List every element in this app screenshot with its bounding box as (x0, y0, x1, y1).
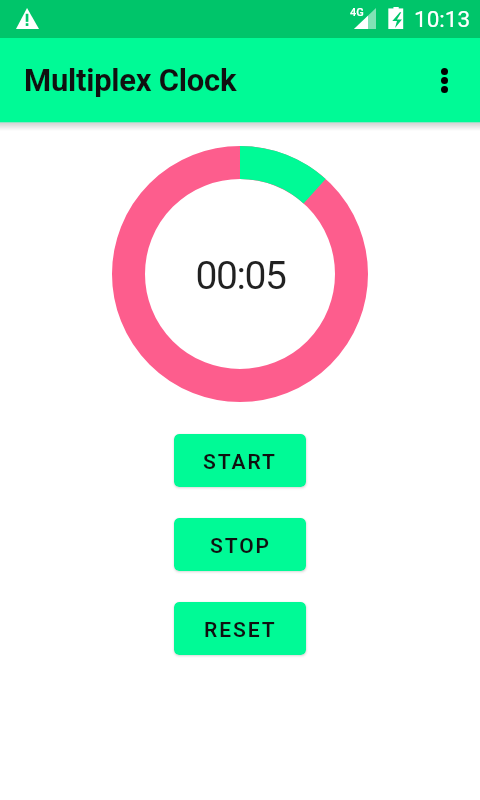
button[interactable]: STOP (174, 518, 306, 571)
staticText: RESET (204, 618, 277, 643)
staticText: Multiplex Clock (24, 62, 237, 98)
button[interactable]: More options (422, 58, 466, 102)
staticText: STOP (210, 534, 271, 559)
staticText: 4G (350, 6, 364, 19)
staticText: 10:13 (414, 6, 471, 32)
button[interactable]: RESET (174, 602, 306, 655)
staticText: 00:05 (195, 253, 286, 299)
staticText: START (203, 450, 277, 475)
button[interactable]: START (174, 434, 306, 487)
